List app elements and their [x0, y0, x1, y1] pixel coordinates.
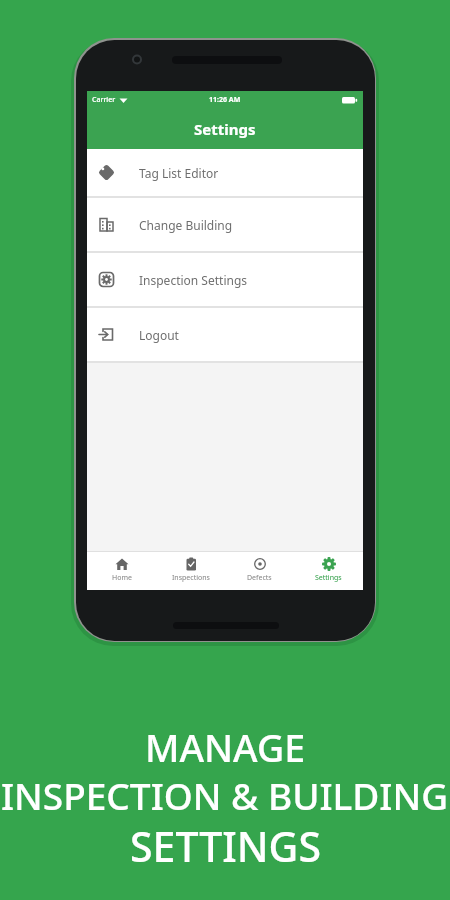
button[interactable]: Inspection Settings — [87, 253, 363, 306]
staticText: Home — [112, 573, 132, 583]
staticText: Settings — [194, 119, 256, 139]
staticText: Inspection Settings — [139, 272, 248, 288]
staticText: Tag List Editor — [139, 165, 219, 181]
staticText: INSPECTION & BUILDING — [1, 770, 449, 818]
button[interactable]: Defects — [225, 552, 294, 590]
button[interactable]: Tag List Editor — [87, 149, 363, 196]
button[interactable]: Inspections — [156, 552, 225, 590]
staticText: SETTINGS — [130, 818, 321, 866]
button[interactable]: Home — [87, 552, 156, 590]
button[interactable]: Logout — [87, 308, 363, 361]
button[interactable]: Settings — [294, 552, 363, 590]
staticText: Settings — [315, 573, 342, 583]
button[interactable]: Change Building — [87, 198, 363, 251]
staticText: Defects — [247, 573, 272, 583]
staticText: 11:26 AM — [209, 95, 241, 105]
staticText: MANAGE — [145, 722, 306, 770]
staticText: Carrier — [92, 95, 116, 105]
staticText: Change Building — [139, 217, 233, 233]
staticText: Logout — [139, 327, 179, 343]
staticText: Inspections — [172, 573, 210, 583]
